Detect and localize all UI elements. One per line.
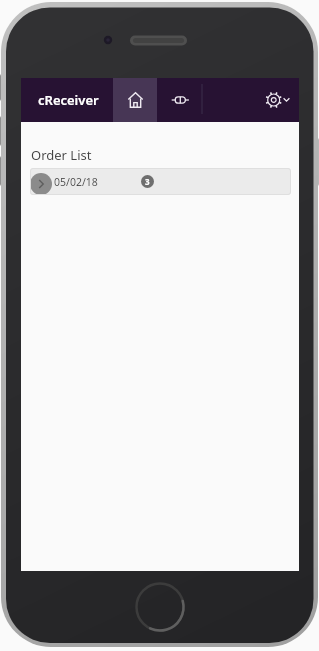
button[interactable]: [253, 78, 299, 122]
staticText: 3: [145, 176, 150, 187]
staticText: Order List: [31, 146, 92, 164]
staticText: cReceiver: [38, 91, 99, 109]
staticText: 05/02/18: [54, 175, 98, 189]
button[interactable]: [113, 78, 157, 122]
button[interactable]: 05/02/18: [30, 168, 291, 195]
button[interactable]: [157, 78, 202, 122]
